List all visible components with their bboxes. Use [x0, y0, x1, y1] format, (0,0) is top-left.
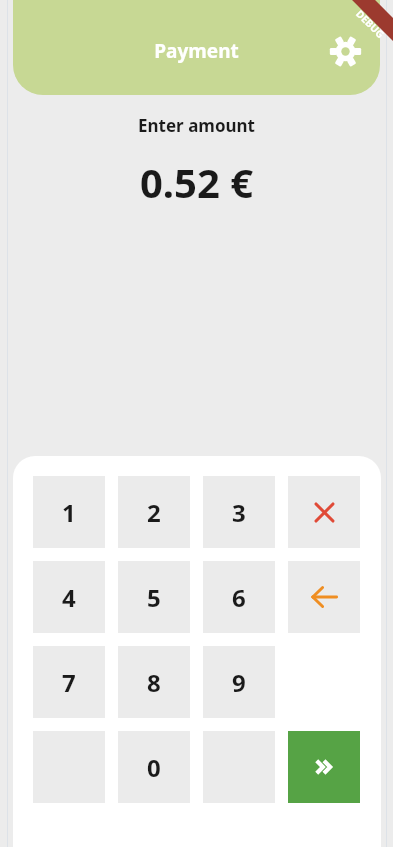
staticText: 2 — [147, 496, 161, 529]
staticText: 9 — [232, 666, 246, 699]
staticText: 4 — [62, 581, 76, 614]
button[interactable]: 9 — [203, 646, 275, 718]
button[interactable]: 2 — [118, 476, 190, 548]
button[interactable]: 6 — [203, 561, 275, 633]
button[interactable]: Backspace — [288, 561, 360, 633]
staticText: 7 — [62, 666, 76, 699]
staticText: 1 — [62, 496, 76, 529]
button[interactable]: 5 — [118, 561, 190, 633]
staticText: 0 — [147, 751, 161, 784]
button[interactable]: 7 — [33, 646, 105, 718]
staticText: Payment — [154, 38, 239, 64]
staticText: 3 — [232, 496, 246, 529]
staticText: 0.52 € — [0, 155, 393, 209]
staticText: DEBUG — [353, 7, 388, 41]
button[interactable]: 3 — [203, 476, 275, 548]
button[interactable]: Settings — [325, 31, 365, 71]
button[interactable]: Submit payment — [288, 731, 360, 803]
button[interactable]: Clear — [288, 476, 360, 548]
button[interactable]: 8 — [118, 646, 190, 718]
staticText: 5 — [147, 581, 161, 614]
button[interactable]: 1 — [33, 476, 105, 548]
staticText: 8 — [147, 666, 161, 699]
button[interactable]: 4 — [33, 561, 105, 633]
staticText: Enter amount — [0, 114, 393, 137]
button[interactable]: 0 — [118, 731, 190, 803]
staticText: 6 — [232, 581, 246, 614]
